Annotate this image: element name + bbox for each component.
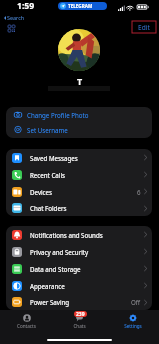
button[interactable]: Devices bbox=[6, 183, 152, 200]
staticText: Chat Folders bbox=[30, 204, 67, 212]
staticText: Power Saving bbox=[30, 298, 70, 306]
staticText: Off bbox=[131, 298, 141, 306]
staticText: Recent Calls bbox=[30, 171, 66, 179]
button[interactable]: Settings bbox=[106, 311, 159, 331]
button[interactable]: Saved Messages bbox=[6, 149, 152, 166]
button[interactable]: Contacts bbox=[0, 311, 53, 331]
staticText: Notifications and Sounds bbox=[30, 231, 103, 239]
staticText: Data and Storage bbox=[30, 265, 81, 273]
button[interactable]: Chat Folders bbox=[6, 200, 152, 216]
staticText: Saved Messages bbox=[30, 154, 78, 162]
button[interactable]: Search bbox=[2, 13, 27, 22]
staticText: Privacy and Security bbox=[30, 248, 89, 256]
button[interactable]: Profile photo bbox=[58, 29, 100, 71]
staticText: Contacts bbox=[17, 323, 36, 329]
button[interactable]: 239 bbox=[53, 311, 106, 331]
button[interactable]: QR code bbox=[8, 25, 15, 32]
staticText: Settings bbox=[124, 323, 142, 329]
staticText: 239 bbox=[76, 311, 85, 317]
staticText: 1:59 bbox=[17, 0, 35, 12]
staticText: Set Username bbox=[27, 126, 68, 134]
staticText: Chats bbox=[73, 323, 86, 329]
button[interactable]: Recent Calls bbox=[6, 166, 152, 183]
button[interactable]: Change Profile Photo bbox=[6, 107, 152, 122]
button[interactable]: Appearance bbox=[6, 277, 152, 294]
staticText: Change Profile Photo bbox=[27, 111, 89, 119]
button[interactable]: Edit bbox=[132, 21, 156, 33]
staticText: TELEGRAM bbox=[68, 3, 93, 9]
button[interactable]: Notifications and Sounds bbox=[6, 226, 152, 243]
button[interactable]: Data and Storage bbox=[6, 260, 152, 277]
staticText: Edit bbox=[138, 23, 150, 32]
staticText: Devices bbox=[30, 188, 53, 196]
staticText: 6 bbox=[137, 188, 141, 196]
staticText: T bbox=[77, 75, 83, 87]
button[interactable]: Privacy and Security bbox=[6, 243, 152, 260]
button[interactable]: Power Saving bbox=[6, 294, 152, 310]
staticText: Search bbox=[7, 14, 25, 21]
staticText: Appearance bbox=[30, 282, 65, 290]
button[interactable]: Set Username bbox=[6, 122, 152, 137]
